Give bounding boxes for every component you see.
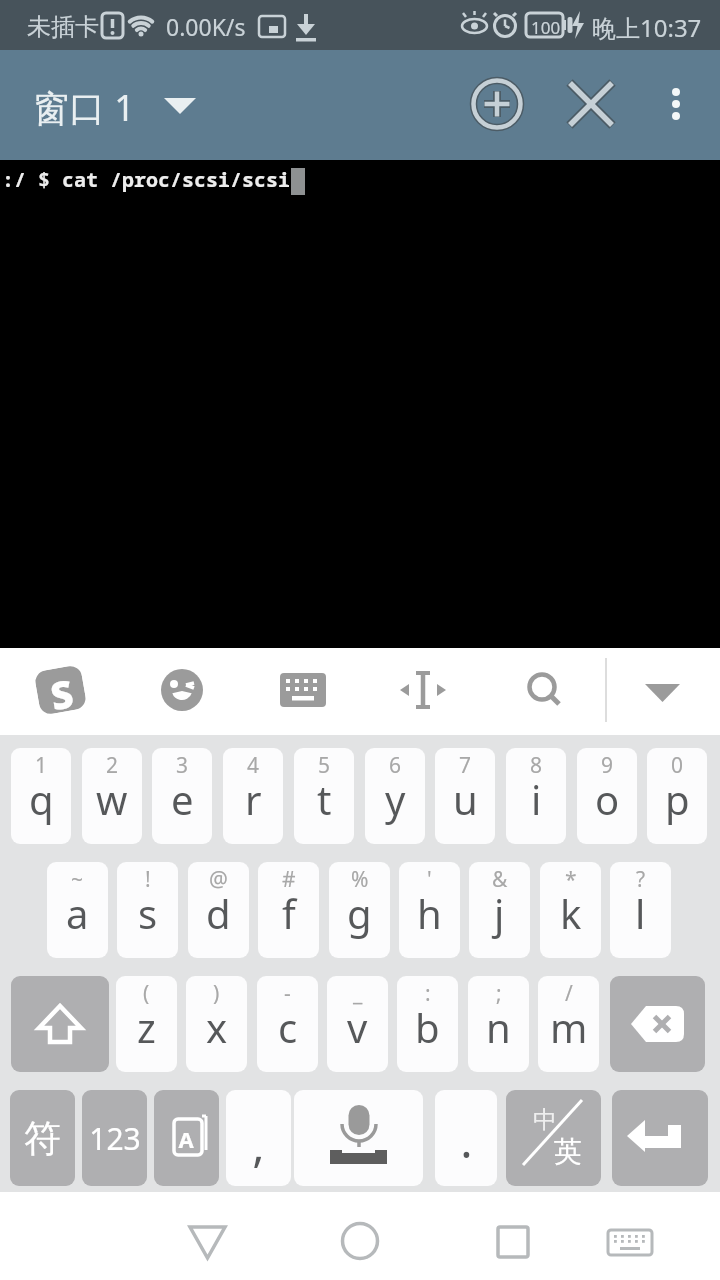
staticText: q: [29, 772, 54, 826]
staticText: 6: [389, 751, 402, 780]
staticText: 1: [35, 751, 48, 780]
staticText: g: [347, 886, 372, 940]
button[interactable]: :: [397, 976, 458, 1072]
button[interactable]: 8: [506, 748, 566, 844]
button[interactable]: S: [33, 664, 87, 716]
button[interactable]: 1: [11, 748, 71, 844]
button[interactable]: ,: [226, 1090, 291, 1186]
button[interactable]: ?: [610, 862, 671, 958]
button[interactable]: 2: [82, 748, 142, 844]
staticText: o: [595, 772, 620, 826]
button[interactable]: &: [469, 862, 530, 958]
staticText: &: [492, 865, 508, 894]
staticText: v: [347, 1000, 368, 1054]
staticText: w: [96, 772, 128, 826]
staticText: 4: [247, 751, 260, 780]
button[interactable]: 中: [506, 1090, 601, 1186]
staticText: c: [278, 1000, 298, 1054]
button[interactable]: _: [327, 976, 388, 1072]
button[interactable]: 9: [577, 748, 637, 844]
staticText: m: [550, 1000, 588, 1054]
button[interactable]: [20, 80, 210, 130]
button[interactable]: [562, 74, 622, 134]
staticText: ~: [71, 865, 84, 894]
button[interactable]: [150, 660, 214, 724]
button[interactable]: 0: [647, 748, 707, 844]
button[interactable]: (: [116, 976, 177, 1072]
button[interactable]: [160, 1202, 255, 1272]
button[interactable]: 符: [10, 1090, 75, 1186]
button[interactable]: !: [117, 862, 178, 958]
staticText: s: [138, 886, 158, 940]
staticText: *: [565, 865, 577, 894]
button[interactable]: [294, 1090, 423, 1186]
staticText: 9: [601, 751, 614, 780]
button[interactable]: ~: [47, 862, 108, 958]
staticText: a: [66, 886, 89, 940]
button[interactable]: @: [188, 862, 249, 958]
staticText: u: [453, 772, 478, 826]
button[interactable]: [391, 660, 455, 724]
button[interactable]: /: [538, 976, 599, 1072]
button[interactable]: [465, 1202, 560, 1272]
button[interactable]: [612, 1090, 708, 1186]
button[interactable]: #: [258, 862, 319, 958]
staticText: :: [425, 979, 431, 1008]
button[interactable]: 6: [365, 748, 425, 844]
staticText: d: [206, 886, 231, 940]
button[interactable]: A: [154, 1090, 219, 1186]
staticText: t: [317, 772, 332, 826]
staticText: @: [209, 865, 228, 894]
button[interactable]: -: [257, 976, 318, 1072]
staticText: j: [494, 886, 505, 940]
staticText: S: [46, 666, 76, 713]
staticText: 8: [530, 751, 543, 780]
staticText: p: [665, 772, 690, 826]
staticText: 英: [554, 1134, 582, 1169]
staticText: .: [460, 1109, 473, 1172]
staticText: 未插卡: [27, 12, 99, 42]
staticText: 窗口 1: [33, 83, 135, 132]
staticText: b: [415, 1000, 440, 1054]
staticText: k: [560, 886, 582, 940]
staticText: 0: [671, 751, 684, 780]
button[interactable]: 5: [294, 748, 354, 844]
staticText: (: [143, 979, 150, 1008]
staticText: ?: [636, 865, 646, 894]
staticText: A: [178, 1124, 194, 1154]
button[interactable]: .: [435, 1090, 497, 1186]
button[interactable]: [313, 1202, 408, 1272]
button[interactable]: [11, 976, 109, 1072]
staticText: h: [417, 886, 442, 940]
staticText: n: [486, 1000, 511, 1054]
staticText: ': [427, 865, 432, 894]
button[interactable]: [590, 1202, 670, 1272]
button[interactable]: [610, 976, 705, 1072]
button[interactable]: 123: [82, 1090, 147, 1186]
staticText: ): [213, 979, 220, 1008]
button[interactable]: [630, 660, 694, 724]
button[interactable]: [467, 74, 527, 134]
button[interactable]: 4: [223, 748, 283, 844]
staticText: 7: [459, 751, 472, 780]
button[interactable]: 7: [435, 748, 495, 844]
staticText: :/ $ cat /proc/scsi/scsi: [2, 166, 290, 193]
button[interactable]: 3: [152, 748, 212, 844]
staticText: 123: [89, 1118, 141, 1159]
button[interactable]: [511, 660, 575, 724]
staticText: ;: [496, 979, 502, 1008]
staticText: z: [137, 1000, 156, 1054]
staticText: 符: [24, 1115, 61, 1162]
button[interactable]: *: [540, 862, 601, 958]
button[interactable]: %: [329, 862, 390, 958]
staticText: y: [385, 772, 406, 826]
button[interactable]: ': [399, 862, 460, 958]
button[interactable]: ): [186, 976, 247, 1072]
button[interactable]: [651, 74, 701, 134]
staticText: x: [206, 1000, 228, 1054]
staticText: 2: [106, 751, 119, 780]
button[interactable]: ;: [468, 976, 529, 1072]
staticText: /: [565, 979, 573, 1008]
button[interactable]: [271, 660, 335, 724]
staticText: #: [282, 865, 296, 894]
